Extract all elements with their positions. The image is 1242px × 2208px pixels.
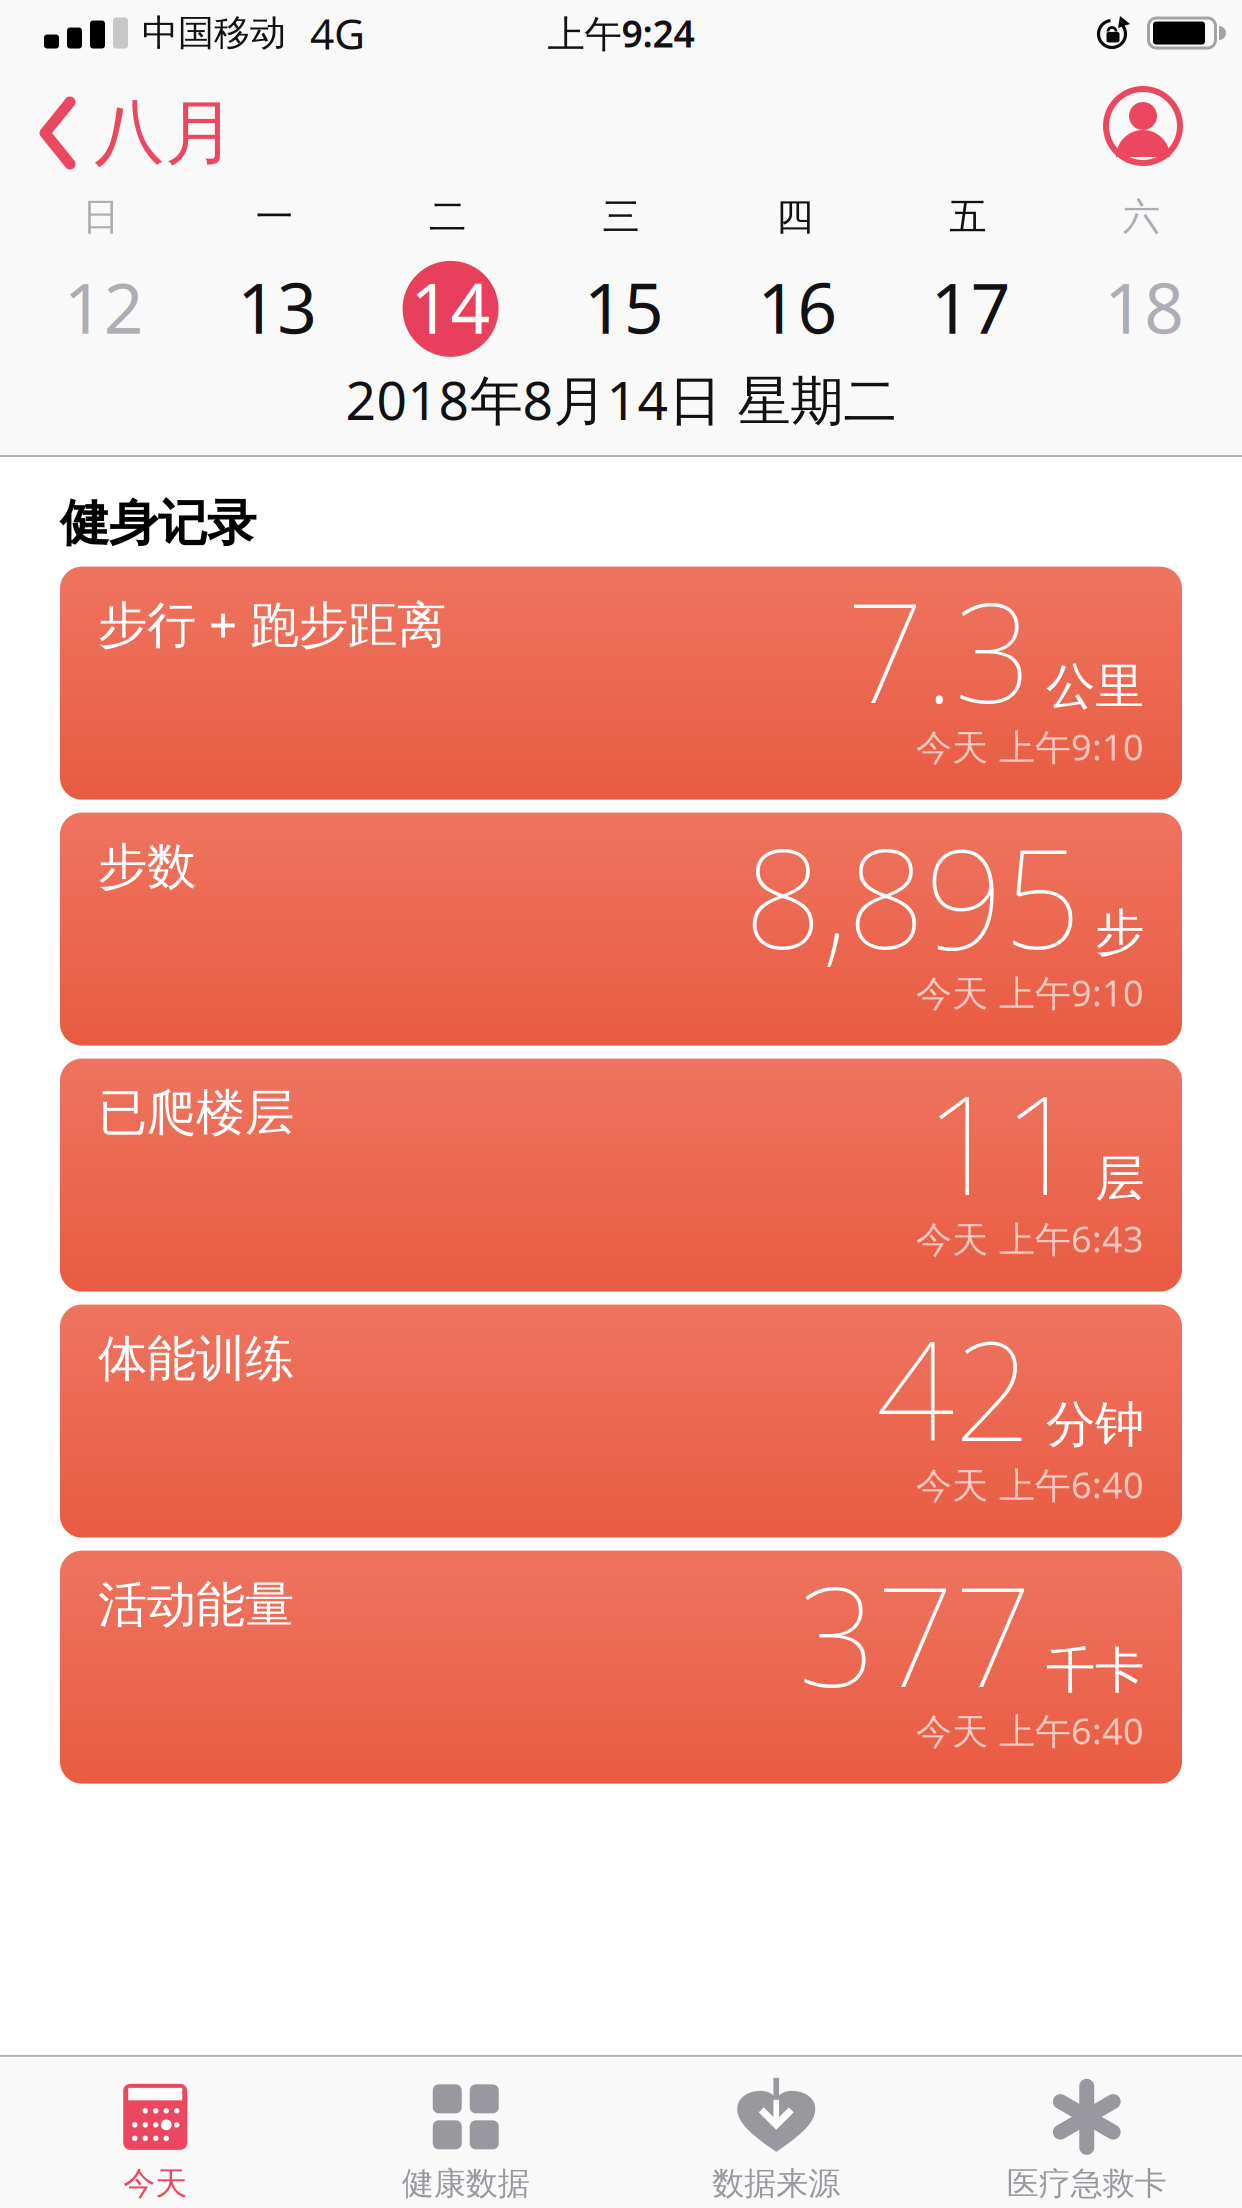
staticText: 公里 xyxy=(1046,656,1144,717)
button[interactable]: 步数 xyxy=(60,813,1182,1046)
staticText: 三 xyxy=(602,194,639,240)
staticText: 16 xyxy=(757,261,837,353)
staticText: 15 xyxy=(584,261,664,353)
staticText: 今天 上午6:40 xyxy=(916,1707,1144,1754)
button[interactable]: 13 xyxy=(190,258,364,356)
staticText: 14 xyxy=(411,261,491,353)
staticText: 今天 上午6:43 xyxy=(916,1215,1144,1262)
staticText: 体能训练 xyxy=(98,1329,294,1389)
button[interactable]: 17 xyxy=(884,258,1057,356)
staticText: 五 xyxy=(949,194,986,240)
staticText: 活动能量 xyxy=(98,1575,294,1635)
staticText: 377 xyxy=(798,1543,1032,1725)
staticText: 12 xyxy=(64,261,144,353)
staticText: 步数 xyxy=(98,837,196,897)
staticText: 今天 上午9:10 xyxy=(916,723,1144,770)
button[interactable]: 步行 + 跑步距离 xyxy=(60,567,1182,800)
staticText: 今天 xyxy=(123,2164,187,2203)
button[interactable]: 已爬楼层 xyxy=(60,1059,1182,1292)
staticText: 42 xyxy=(876,1297,1032,1479)
staticText: 数据来源 xyxy=(712,2164,840,2203)
staticText: 步 xyxy=(1095,902,1144,963)
staticText: 7.3 xyxy=(846,559,1032,741)
staticText: 2018年8月14日 星期二 xyxy=(345,364,896,435)
button[interactable]: 八月 xyxy=(40,90,236,176)
staticText: 健康数据 xyxy=(402,2164,530,2203)
staticText: 上午9:24 xyxy=(547,8,694,58)
button[interactable]: 健康数据 xyxy=(310,2084,621,2203)
button[interactable]: 15 xyxy=(537,258,711,356)
staticText: 健身记录 xyxy=(60,493,256,554)
staticText: 六 xyxy=(1123,194,1160,240)
staticText: 八月 xyxy=(94,90,236,176)
staticText: 层 xyxy=(1095,1148,1144,1209)
button[interactable]: 活动能量 xyxy=(60,1551,1182,1784)
staticText: 11 xyxy=(925,1051,1081,1233)
staticText: 二 xyxy=(429,194,466,240)
staticText: 日 xyxy=(82,194,119,240)
button[interactable]: 14 xyxy=(364,258,537,356)
staticText: 8,895 xyxy=(744,805,1081,987)
button[interactable]: 18 xyxy=(1058,258,1231,356)
staticText: 步行 + 跑步距离 xyxy=(98,591,446,656)
staticText: 13 xyxy=(237,261,317,353)
button[interactable]: 16 xyxy=(711,258,884,356)
staticText: 医疗急救卡 xyxy=(1007,2164,1167,2203)
button[interactable]: 今天 xyxy=(0,2084,310,2203)
staticText: 已爬楼层 xyxy=(98,1083,294,1143)
button[interactable]: 个人资料 xyxy=(1103,86,1183,166)
staticText: 中国移动 xyxy=(142,11,286,55)
button[interactable]: 12 xyxy=(17,258,190,356)
staticText: 17 xyxy=(931,261,1011,353)
button[interactable]: 体能训练 xyxy=(60,1305,1182,1538)
staticText: 今天 上午9:10 xyxy=(916,969,1144,1016)
button[interactable]: 医疗急救卡 xyxy=(931,2084,1242,2203)
staticText: 分钟 xyxy=(1046,1394,1144,1455)
staticText: 18 xyxy=(1104,261,1184,353)
staticText: 今天 上午6:40 xyxy=(916,1461,1144,1508)
staticText: 4G xyxy=(310,5,365,61)
staticText: 一 xyxy=(256,194,293,240)
staticText: 四 xyxy=(776,194,813,240)
button[interactable]: 数据来源 xyxy=(621,2084,931,2203)
staticText: 千卡 xyxy=(1046,1640,1144,1701)
